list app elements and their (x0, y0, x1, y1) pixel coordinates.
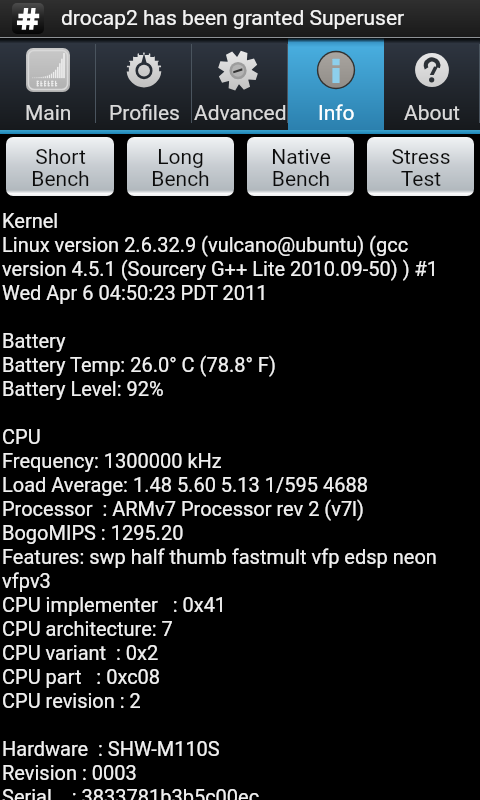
staticText: Advanced (194, 101, 287, 126)
button[interactable]: About (384, 38, 480, 130)
staticText: Profiles (109, 101, 180, 126)
staticText: About (404, 101, 460, 126)
button[interactable]: Superuser (12, 3, 44, 34)
button[interactable]: Stress Test (367, 137, 474, 196)
button[interactable]: Profiles (96, 38, 192, 130)
button[interactable]: Native Bench (247, 137, 354, 196)
button[interactable]: Info (288, 38, 384, 130)
staticText: Short Bench (31, 145, 90, 192)
staticText: Kernel Linux version 2.6.32.9 (vulcano@u… (2, 209, 439, 800)
button[interactable]: Long Bench (127, 137, 234, 196)
button[interactable]: Advanced (192, 38, 288, 130)
staticText: Stress Test (391, 145, 451, 192)
staticText: Native Bench (271, 145, 331, 192)
button[interactable]: Main (0, 38, 96, 130)
staticText: drocap2 has been granted Superuser (61, 6, 405, 31)
staticText: Long Bench (151, 145, 210, 192)
button[interactable]: Short Bench (6, 137, 114, 196)
staticText: Main (25, 101, 72, 126)
staticText: Info (318, 101, 355, 126)
